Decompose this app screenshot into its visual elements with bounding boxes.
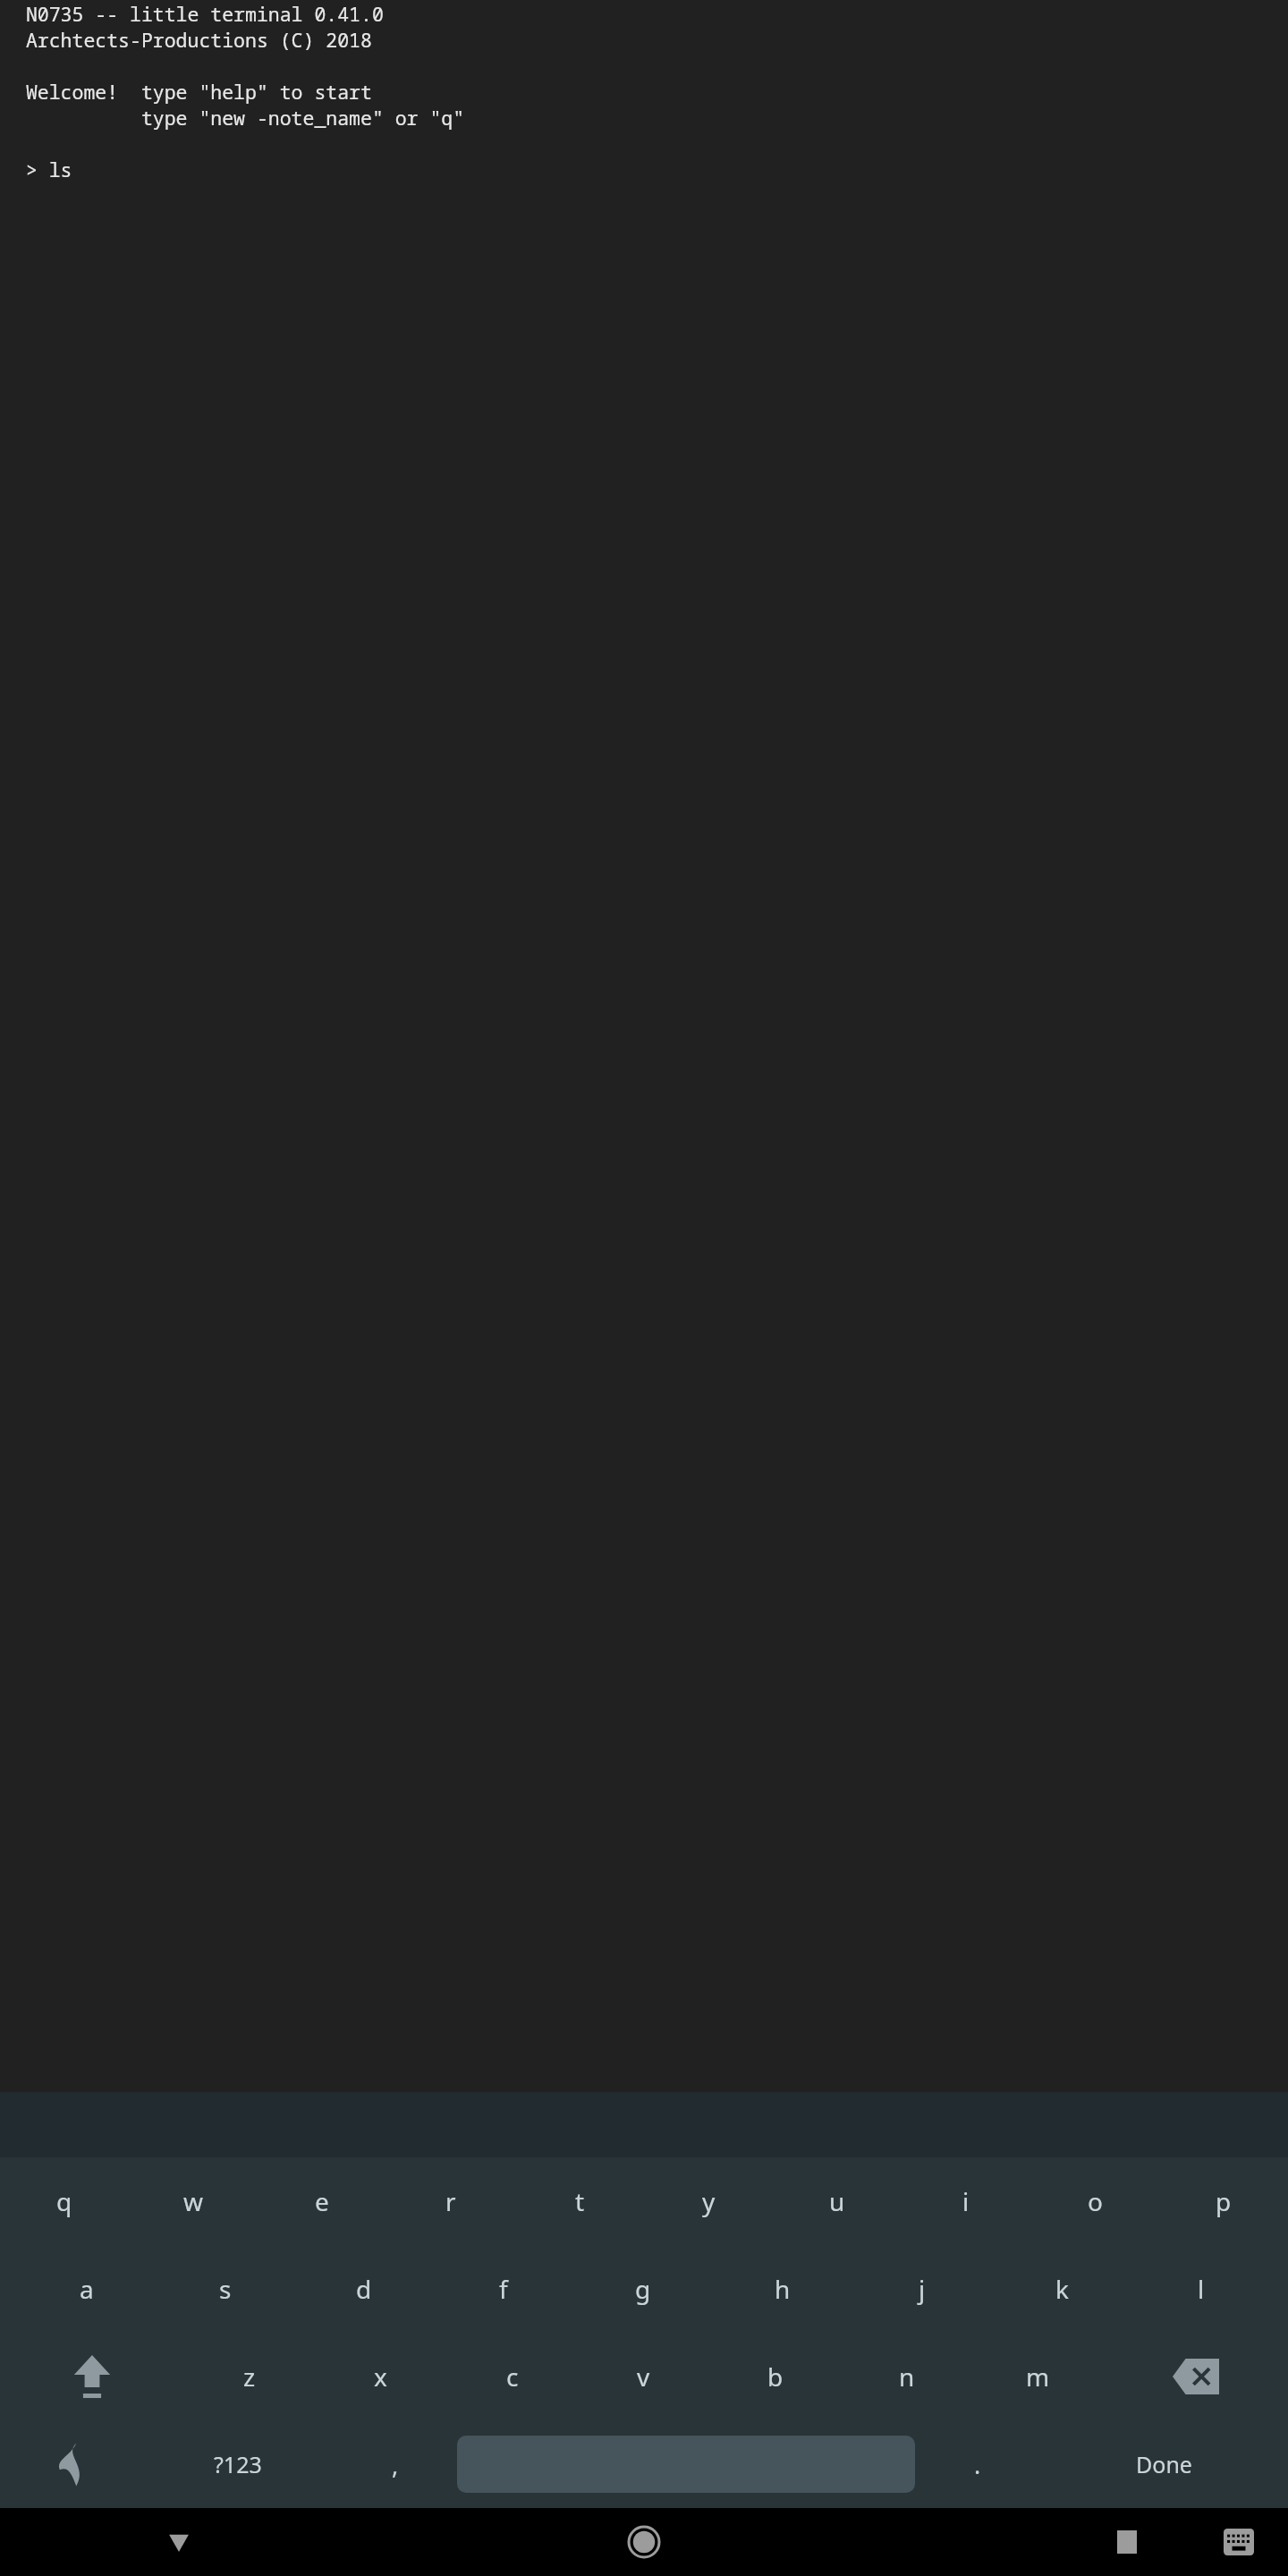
button[interactable]: s xyxy=(156,2245,294,2333)
button[interactable]: l xyxy=(1131,2245,1271,2333)
button[interactable]: m xyxy=(972,2333,1104,2420)
staticText: v xyxy=(637,2360,650,2394)
staticText: j xyxy=(919,2272,926,2306)
staticText: l xyxy=(1198,2272,1205,2306)
staticText: ?123 xyxy=(214,2449,262,2479)
button[interactable]: x xyxy=(315,2333,446,2420)
button[interactable]: Done xyxy=(1039,2420,1288,2508)
button[interactable]: n xyxy=(841,2333,972,2420)
staticText: f xyxy=(499,2272,508,2306)
staticText: z xyxy=(243,2360,256,2394)
staticText: m xyxy=(1026,2360,1050,2394)
staticText: g xyxy=(635,2272,651,2306)
button[interactable]: f xyxy=(434,2245,573,2333)
staticText: n xyxy=(899,2360,915,2394)
button[interactable]: h xyxy=(713,2245,852,2333)
button[interactable]: o xyxy=(1030,2157,1159,2245)
button[interactable]: Recent apps xyxy=(1064,2508,1190,2576)
button[interactable]: d xyxy=(294,2245,434,2333)
button[interactable]: Shift xyxy=(0,2333,183,2420)
staticText: w xyxy=(183,2184,204,2218)
staticText: c xyxy=(506,2360,519,2394)
staticText: Welcome! type "help" to start xyxy=(14,79,1287,105)
staticText: h xyxy=(775,2272,791,2306)
button[interactable]: Keyboard xyxy=(1190,2508,1288,2576)
staticText: p xyxy=(1216,2184,1232,2218)
staticText: , xyxy=(392,2448,399,2481)
button[interactable]: p xyxy=(1159,2157,1288,2245)
button[interactable]: y xyxy=(644,2157,773,2245)
staticText: N0735 -- little terminal 0.41.0 xyxy=(14,1,1287,27)
button[interactable]: i xyxy=(902,2157,1030,2245)
button[interactable]: g xyxy=(573,2245,713,2333)
staticText: > ls xyxy=(14,157,1287,182)
staticText: o xyxy=(1088,2184,1103,2218)
button[interactable]: v xyxy=(578,2333,709,2420)
button[interactable]: q xyxy=(0,2157,129,2245)
staticText: e xyxy=(315,2184,329,2218)
staticText: d xyxy=(356,2272,372,2306)
staticText: k xyxy=(1055,2272,1069,2306)
staticText: i xyxy=(962,2184,970,2218)
button[interactable]: b xyxy=(709,2333,841,2420)
button[interactable]: Home xyxy=(572,2508,716,2576)
staticText: q xyxy=(56,2184,72,2218)
staticText: y xyxy=(702,2184,716,2218)
button[interactable]: c xyxy=(446,2333,578,2420)
staticText: a xyxy=(80,2272,94,2306)
staticText: u xyxy=(829,2184,845,2218)
button[interactable]: ?123 xyxy=(143,2420,333,2508)
button[interactable]: t xyxy=(515,2157,644,2245)
staticText: r xyxy=(445,2184,456,2218)
button[interactable]: a xyxy=(17,2245,156,2333)
staticText: Done xyxy=(1136,2449,1192,2479)
button[interactable]: Backspace xyxy=(1104,2333,1288,2420)
button[interactable]: r xyxy=(386,2157,515,2245)
button[interactable]: z xyxy=(183,2333,315,2420)
staticText: b xyxy=(767,2360,784,2394)
button[interactable]: Change keyboard xyxy=(0,2420,143,2508)
button[interactable]: w xyxy=(129,2157,258,2245)
button[interactable]: Back xyxy=(89,2508,268,2576)
button[interactable]: e xyxy=(258,2157,386,2245)
staticText: s xyxy=(219,2272,232,2306)
button[interactable]: . xyxy=(915,2420,1039,2508)
staticText: t xyxy=(575,2184,585,2218)
staticText: Archtects-Productions (C) 2018 xyxy=(14,27,1287,53)
button[interactable]: j xyxy=(852,2245,992,2333)
staticText: x xyxy=(374,2360,387,2394)
button[interactable]: k xyxy=(992,2245,1131,2333)
staticText: type "new -note_name" or "q" xyxy=(14,105,1287,131)
button[interactable]: , xyxy=(333,2420,457,2508)
staticText: . xyxy=(974,2448,981,2481)
button[interactable]: u xyxy=(773,2157,902,2245)
button[interactable]: N0735 -- little terminal 0.41.0 xyxy=(0,0,1288,2092)
